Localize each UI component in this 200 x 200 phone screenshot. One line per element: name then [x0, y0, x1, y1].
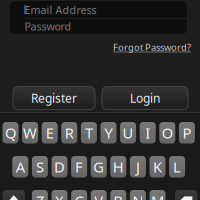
staticText: Password — [25, 19, 72, 33]
staticText: S — [36, 157, 44, 176]
staticText: U — [123, 123, 134, 142]
button[interactable]: B — [110, 190, 126, 200]
staticText: H — [113, 157, 124, 176]
staticText: R — [65, 123, 74, 142]
staticText: Y — [104, 123, 112, 142]
staticText: Register — [31, 90, 77, 106]
button[interactable]: E — [42, 122, 58, 143]
staticText: K — [153, 157, 162, 176]
button[interactable]: Delete — [175, 190, 197, 200]
button[interactable]: Forgot Password? — [113, 41, 191, 53]
staticText: O — [162, 123, 173, 142]
staticText: E — [46, 123, 54, 142]
staticText: Z — [36, 191, 44, 200]
staticText: B — [113, 191, 123, 200]
button[interactable]: O — [159, 122, 175, 143]
button[interactable]: Q — [2, 122, 18, 143]
button[interactable]: Z — [32, 190, 48, 200]
button[interactable]: D — [51, 156, 67, 177]
staticText: Login — [130, 90, 160, 106]
button[interactable]: L — [169, 156, 185, 177]
button[interactable]: M — [149, 190, 165, 200]
button[interactable]: H — [110, 156, 126, 177]
staticText: F — [75, 157, 83, 176]
button[interactable]: X — [51, 190, 67, 200]
button[interactable]: R — [61, 122, 77, 143]
button[interactable]: G — [91, 156, 107, 177]
staticText: V — [94, 191, 103, 200]
staticText: J — [136, 157, 140, 176]
staticText: D — [54, 157, 65, 176]
button[interactable]: C — [71, 190, 87, 200]
staticText: G — [93, 157, 104, 176]
staticText: X — [55, 191, 64, 200]
staticText: P — [182, 123, 191, 142]
staticText: W — [23, 123, 37, 142]
button[interactable]: S — [32, 156, 48, 177]
button[interactable]: A — [12, 156, 28, 177]
button[interactable]: V — [91, 190, 107, 200]
staticText: A — [16, 157, 25, 176]
button[interactable]: K — [149, 156, 165, 177]
staticText: N — [132, 191, 143, 200]
staticText: Forgot Password? — [113, 41, 191, 53]
staticText: T — [85, 123, 93, 142]
staticText: L — [173, 157, 181, 176]
button[interactable]: Register — [13, 86, 95, 109]
button[interactable]: Y — [100, 122, 116, 143]
button[interactable]: Shift — [2, 190, 25, 200]
button[interactable]: Login — [102, 86, 188, 109]
button[interactable]: T — [81, 122, 97, 143]
staticText: C — [75, 191, 84, 200]
button[interactable]: W — [22, 122, 38, 143]
button[interactable]: J — [130, 156, 146, 177]
button[interactable]: F — [71, 156, 87, 177]
staticText: I — [145, 123, 150, 142]
button[interactable]: N — [130, 190, 146, 200]
staticText: Q — [5, 123, 16, 142]
staticText: M — [151, 191, 164, 200]
staticText: Email Address — [25, 3, 97, 17]
button[interactable]: U — [120, 122, 136, 143]
button[interactable]: P — [179, 122, 195, 143]
button[interactable]: I — [140, 122, 156, 143]
